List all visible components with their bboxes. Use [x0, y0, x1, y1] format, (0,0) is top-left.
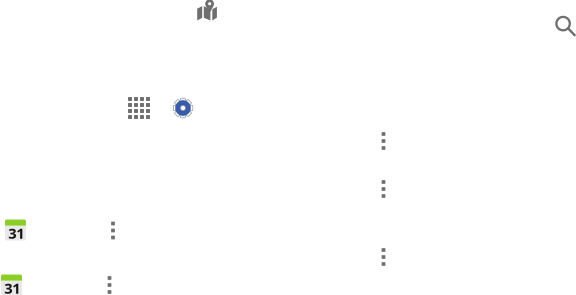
button[interactable]: More options: [381, 132, 385, 150]
button[interactable]: Apps: [128, 97, 150, 119]
button[interactable]: More options: [381, 180, 385, 198]
button[interactable]: More options: [111, 221, 115, 239]
staticText: 31: [8, 223, 24, 243]
button[interactable]: Settings: [173, 98, 193, 118]
staticText: 31: [4, 278, 20, 295]
button[interactable]: Map: [197, 0, 217, 20]
button[interactable]: More options: [107, 276, 111, 294]
button[interactable]: Search: [556, 16, 576, 37]
button[interactable]: More options: [381, 248, 385, 266]
